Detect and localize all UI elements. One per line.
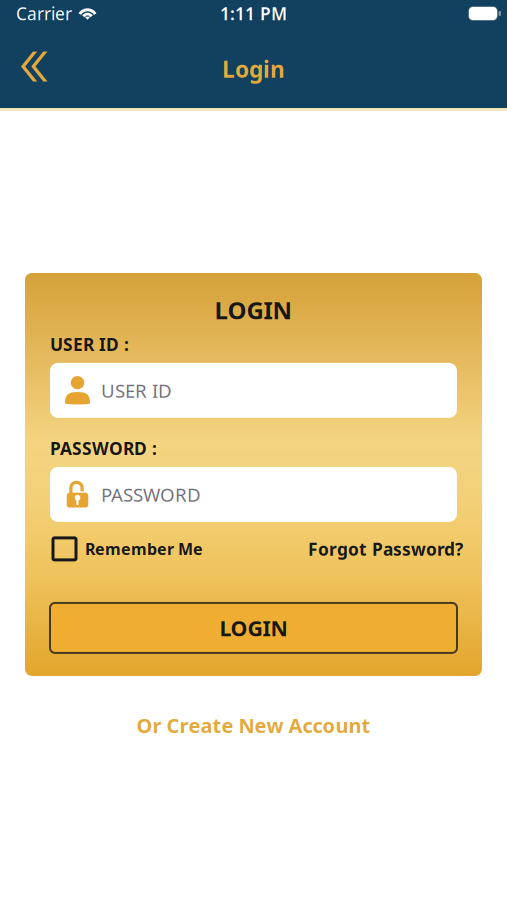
staticText: Carrier	[16, 2, 72, 25]
staticText: LOGIN	[219, 614, 287, 642]
staticText: PASSWORD	[101, 482, 201, 507]
staticText: USER ID	[101, 378, 172, 403]
staticText: LOGIN	[214, 294, 292, 326]
button[interactable]: Remember Me	[50, 538, 203, 560]
staticText: Forgot Password?	[308, 537, 463, 560]
button[interactable]: Forgot Password?	[308, 537, 457, 560]
staticText: PASSWORD :	[50, 437, 157, 460]
button[interactable]: LOGIN	[50, 603, 457, 653]
button[interactable]: Or Create New Account	[116, 676, 390, 752]
button[interactable]: Back	[0, 37, 64, 97]
staticText: 1:11 PM	[220, 2, 287, 25]
staticText: Login	[222, 54, 285, 84]
staticText: USER ID :	[50, 333, 129, 356]
staticText: Remember Me	[85, 538, 203, 559]
staticText: Or Create New Account	[136, 712, 370, 738]
